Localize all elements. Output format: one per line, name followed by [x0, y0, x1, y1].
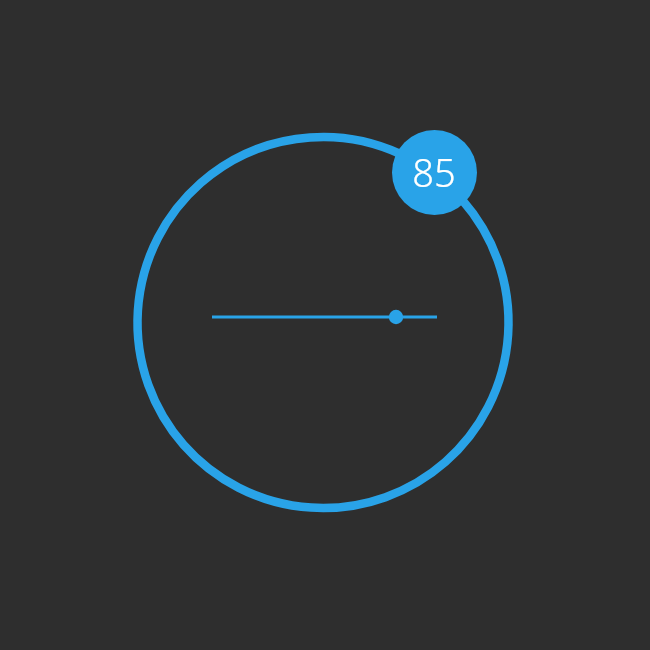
button[interactable]: Brightness dial, 85 percent [0, 0, 650, 650]
staticText: 85 [412, 146, 456, 198]
